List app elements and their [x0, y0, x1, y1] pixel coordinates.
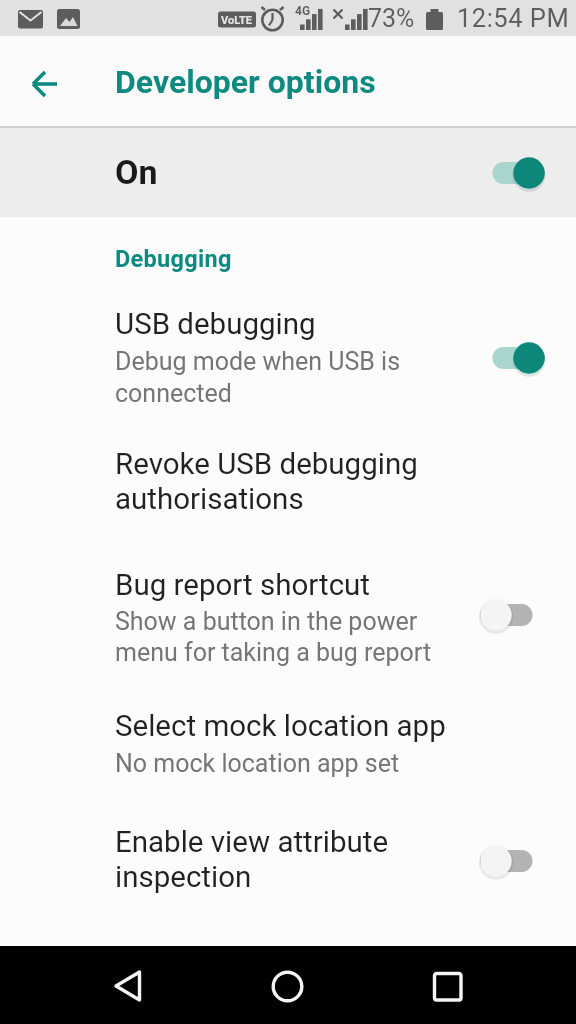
staticText: No mock location app set	[115, 749, 400, 778]
button[interactable]	[420, 957, 476, 1013]
staticText: inspection	[115, 860, 252, 895]
staticText: Debug mode when USB is	[115, 347, 401, 376]
staticText: connected	[115, 379, 232, 408]
staticText: Developer options	[115, 63, 376, 101]
staticText: VoLTE	[221, 14, 253, 27]
staticText: authorisations	[115, 482, 304, 517]
staticText: Enable view attribute	[115, 825, 389, 860]
staticText: On	[115, 152, 158, 192]
staticText: 73%	[368, 4, 415, 33]
staticText: Debugging	[115, 245, 232, 273]
button[interactable]: Revoke USB debugging	[0, 430, 576, 530]
button[interactable]: On	[0, 128, 576, 217]
staticText: USB debugging	[115, 307, 316, 342]
staticText: 4G	[295, 4, 311, 18]
button[interactable]	[24, 63, 66, 105]
staticText: 12:54 PM	[457, 3, 570, 33]
button[interactable]: Bug report shortcut	[0, 553, 576, 681]
staticText: Show a button in the power	[115, 607, 418, 636]
staticText: Bug report shortcut	[115, 568, 370, 603]
button[interactable]	[100, 957, 156, 1013]
button[interactable]: Select mock location app	[0, 695, 576, 790]
button[interactable]: Enable view attribute	[0, 810, 576, 915]
staticText: Revoke USB debugging	[115, 447, 418, 482]
staticText: menu for taking a bug report	[115, 638, 432, 667]
staticText: Select mock location app	[115, 709, 446, 744]
button[interactable]: USB debugging	[0, 290, 576, 420]
button[interactable]	[260, 957, 316, 1013]
